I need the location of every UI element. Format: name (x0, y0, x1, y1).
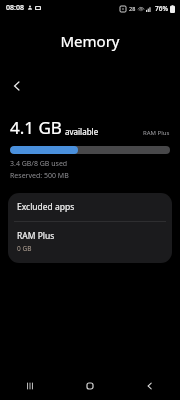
staticText: 08:08 (6, 3, 24, 13)
button[interactable]: Recent apps (0, 372, 60, 400)
staticText: RAM Plus (17, 230, 55, 242)
button[interactable]: Home (60, 372, 120, 400)
staticText: Memory (60, 31, 120, 51)
staticText: Excluded apps (17, 201, 75, 213)
staticText: 0 GB (17, 244, 32, 253)
staticText: 4.1 GB (10, 116, 62, 139)
staticText: RAM Plus (143, 129, 170, 137)
staticText: 28 (129, 5, 136, 12)
staticText: 3.4 GB/8 GB used (10, 159, 68, 169)
staticText: available (65, 126, 99, 137)
button[interactable]: Back (4, 73, 30, 99)
button[interactable]: Back (120, 372, 180, 400)
staticText: Reserved: 500 MB (10, 171, 69, 181)
button[interactable]: RAM Plus (8, 222, 172, 263)
staticText: 76% (155, 4, 168, 13)
button[interactable]: Excluded apps (8, 193, 172, 221)
